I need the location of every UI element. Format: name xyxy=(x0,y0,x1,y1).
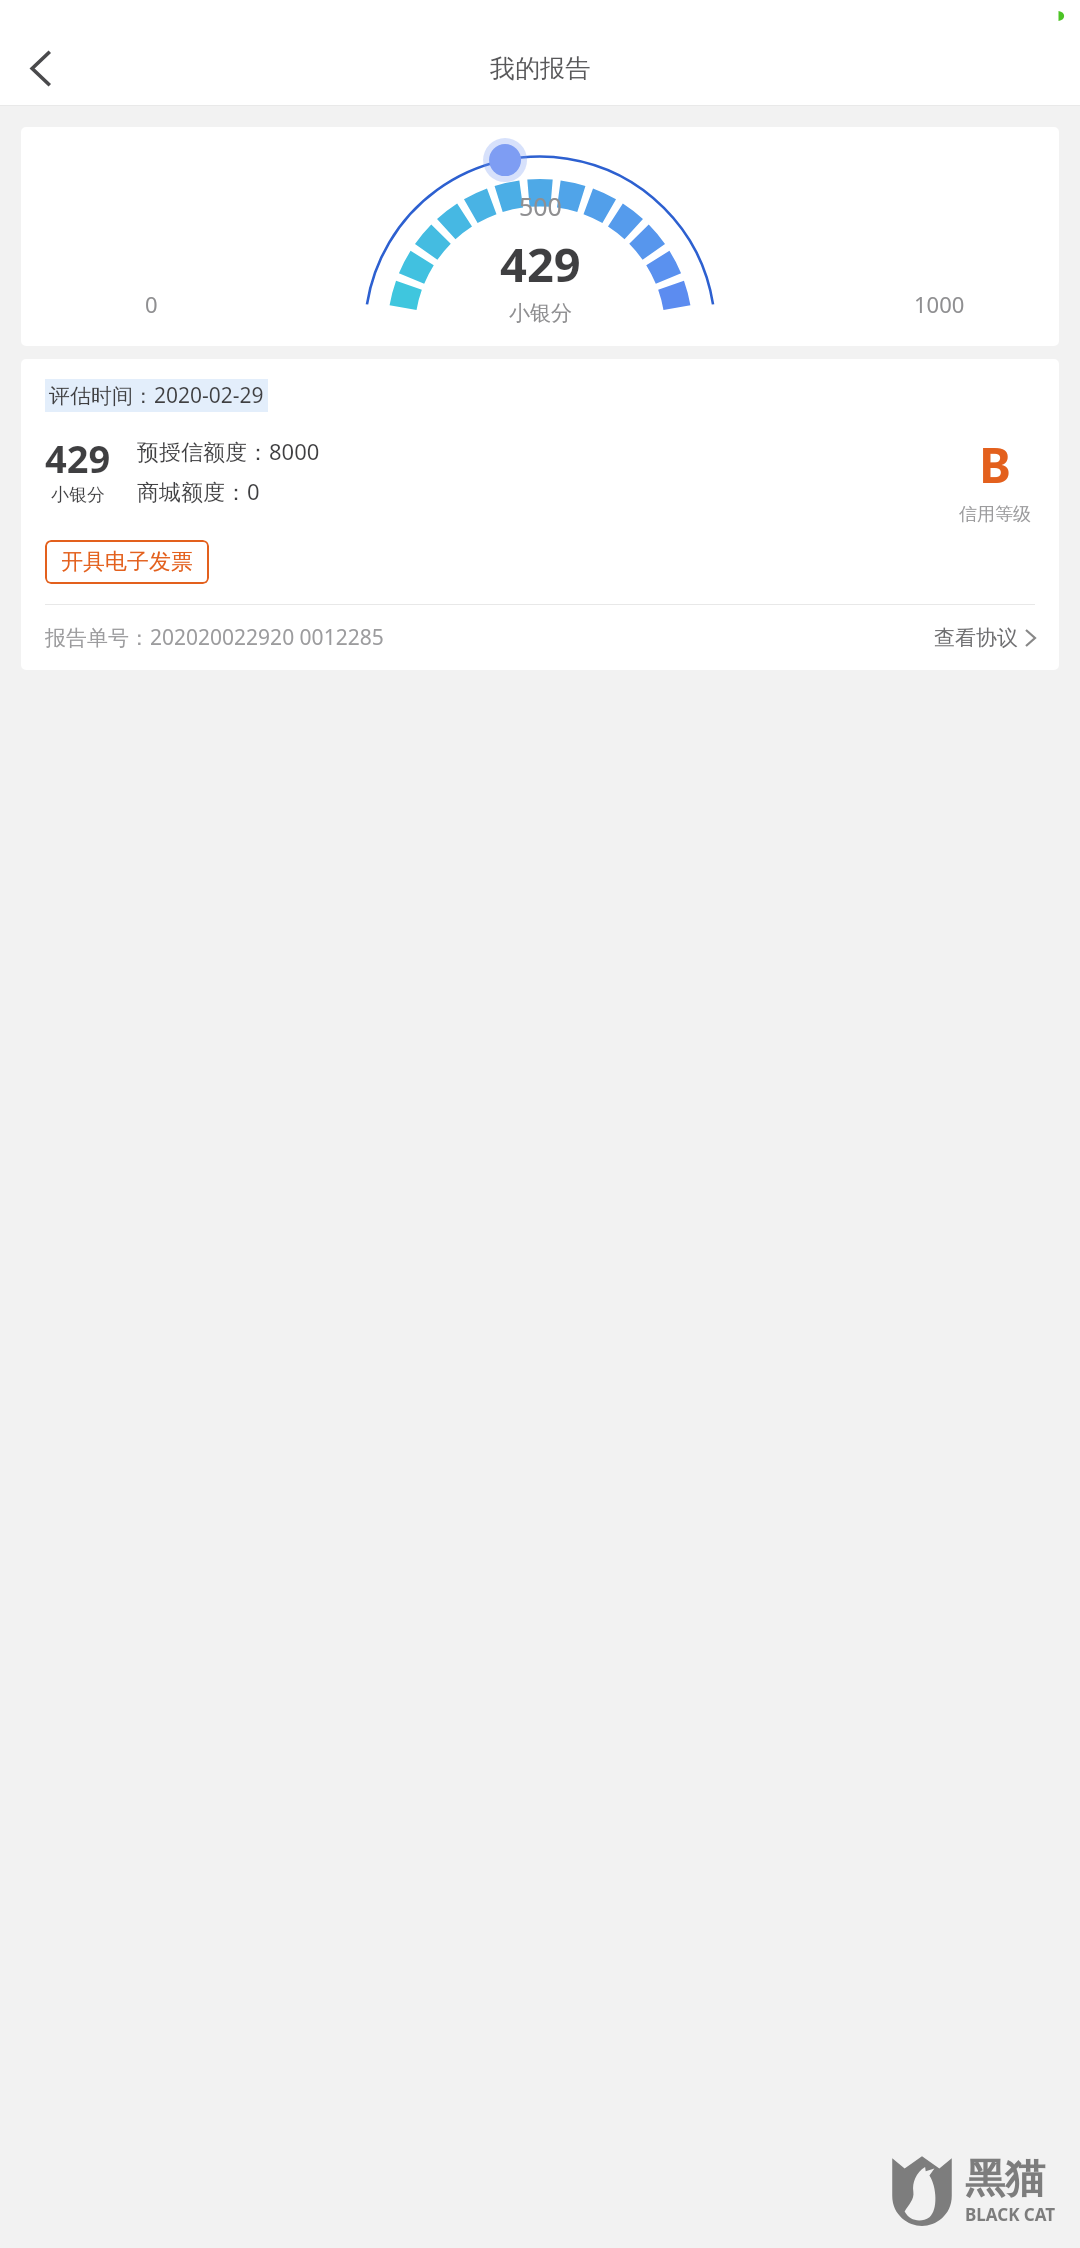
staticText: 0 xyxy=(145,289,158,319)
staticText: 我的报告 xyxy=(490,53,590,84)
button[interactable]: 查看协议 xyxy=(934,625,1035,651)
staticText: 报告单号：202020022920 0012285 xyxy=(45,623,384,652)
staticText: 小银分 xyxy=(509,300,572,326)
button[interactable]: 开具电子发票 xyxy=(45,540,209,584)
staticText: 查看协议 xyxy=(934,625,1018,651)
staticText: 黑猫 xyxy=(965,2153,1045,2203)
staticText: 500 xyxy=(519,189,562,223)
staticText: B xyxy=(979,432,1011,497)
staticText: BLACK CAT xyxy=(965,2203,1056,2226)
staticText: 商城额度：0 xyxy=(137,476,260,506)
staticText: 429 xyxy=(45,432,111,484)
staticText: 评估时间：2020-02-29 xyxy=(49,381,264,410)
staticText: 1000 xyxy=(914,289,965,319)
staticText: 小银分 xyxy=(51,484,105,507)
staticText: 开具电子发票 xyxy=(61,548,193,576)
staticText: 429 xyxy=(500,232,581,296)
staticText: 信用等级 xyxy=(959,503,1031,526)
staticText: 预授信额度：8000 xyxy=(137,436,320,466)
button[interactable]: Back xyxy=(14,42,66,94)
